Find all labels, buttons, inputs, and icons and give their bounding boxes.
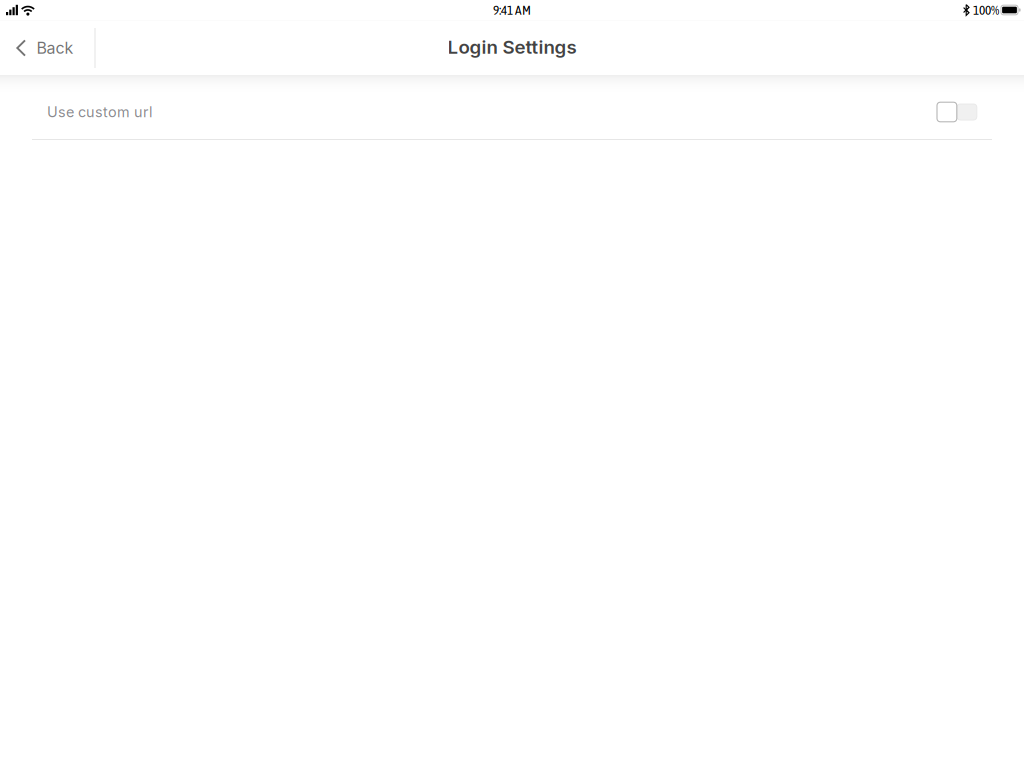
staticText: Use custom url bbox=[47, 103, 152, 121]
button[interactable]: Use custom url bbox=[0, 75, 1024, 139]
staticText: 100% bbox=[973, 2, 999, 18]
staticText: Login Settings bbox=[447, 36, 576, 58]
button[interactable]: Back bbox=[0, 21, 94, 75]
staticText: Back bbox=[36, 38, 73, 58]
staticText: 9:41 AM bbox=[493, 2, 531, 18]
